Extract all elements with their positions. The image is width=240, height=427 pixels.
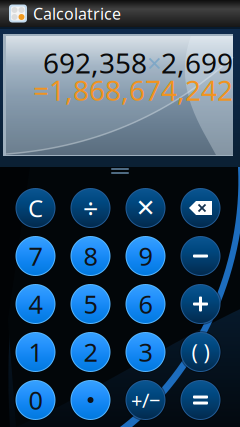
button[interactable]: 4 bbox=[10, 280, 61, 327]
staticText: ✕ bbox=[135, 194, 155, 222]
staticText: 1 bbox=[28, 335, 42, 369]
staticText: 4 bbox=[28, 287, 42, 321]
staticText: ( ) bbox=[191, 338, 209, 366]
staticText: +/− bbox=[131, 387, 160, 413]
button[interactable]: 8 bbox=[65, 232, 116, 279]
button[interactable]: ÷ bbox=[65, 184, 116, 231]
button[interactable]: 7 bbox=[10, 232, 61, 279]
staticText: 0 bbox=[28, 383, 42, 417]
staticText: 3 bbox=[138, 335, 152, 369]
button[interactable]: 0 bbox=[10, 376, 61, 423]
staticText: 2,699 bbox=[161, 44, 233, 81]
staticText: C bbox=[28, 192, 43, 224]
button[interactable] bbox=[175, 184, 226, 231]
staticText: Calcolatrice bbox=[33, 3, 121, 24]
button[interactable]: 1 bbox=[10, 328, 61, 375]
staticText: 8 bbox=[83, 239, 97, 273]
button[interactable]: 6 bbox=[120, 280, 171, 327]
button[interactable] bbox=[175, 232, 226, 279]
staticText: =1,868,674,242 bbox=[33, 71, 233, 108]
button[interactable]: +/− bbox=[120, 376, 171, 423]
button[interactable] bbox=[175, 280, 226, 327]
staticText: 6 bbox=[138, 287, 152, 321]
staticText: 7 bbox=[28, 239, 42, 273]
button[interactable]: 9 bbox=[120, 232, 171, 279]
staticText: 2 bbox=[83, 335, 97, 369]
button[interactable]: 5 bbox=[65, 280, 116, 327]
button[interactable]: C bbox=[10, 184, 61, 231]
staticText: 9 bbox=[138, 239, 152, 273]
button[interactable] bbox=[65, 376, 116, 423]
staticText: ÷ bbox=[83, 190, 98, 226]
button[interactable]: 2 bbox=[65, 328, 116, 375]
staticText: 5 bbox=[83, 287, 97, 321]
staticText: 692,358 bbox=[43, 44, 147, 81]
button[interactable]: ✕ bbox=[120, 184, 171, 231]
staticText: × bbox=[147, 46, 161, 79]
button[interactable]: ( ) bbox=[175, 328, 226, 375]
button[interactable]: 3 bbox=[120, 328, 171, 375]
button[interactable] bbox=[175, 376, 226, 423]
